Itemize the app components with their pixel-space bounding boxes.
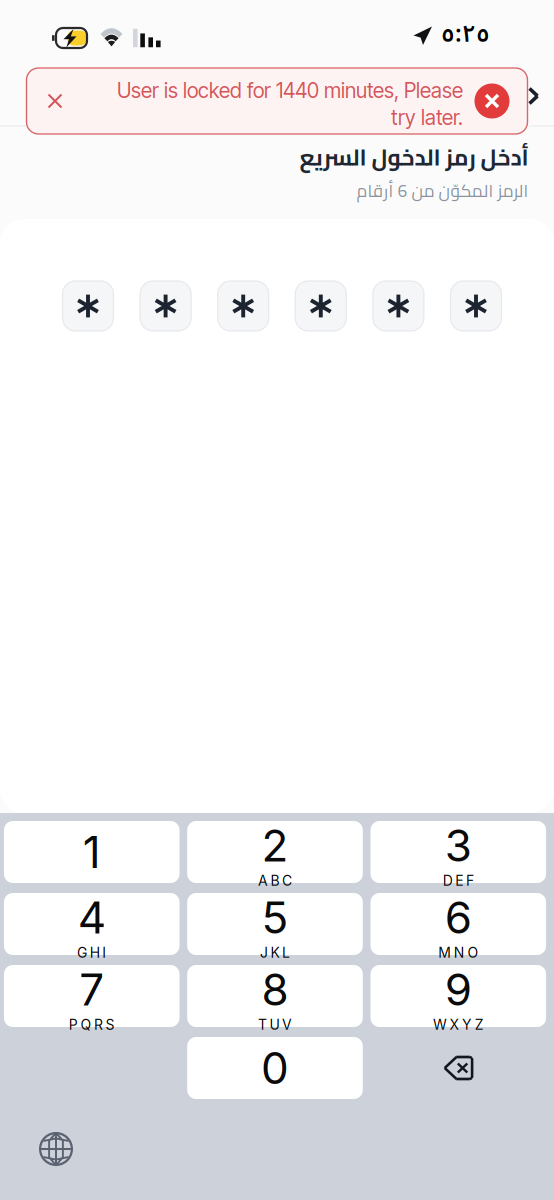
staticText: 4 [78,891,106,944]
staticText: 7 [79,963,104,1016]
button[interactable]: 2 [187,821,363,883]
staticText: P [69,1016,78,1033]
staticText: T [258,1016,267,1033]
staticText: R [94,1016,103,1033]
staticText: F [466,872,474,889]
staticText: أدخل رمز الدخول السريع [299,136,528,178]
staticText: M [438,944,451,961]
button[interactable]: Change keyboard [33,1126,79,1172]
button[interactable]: 1 [4,821,179,883]
button[interactable]: 5 [187,893,363,955]
staticText: J [260,944,268,961]
staticText: W [433,1016,447,1033]
staticText: try later. [391,105,463,130]
button[interactable]: 0 [187,1037,363,1099]
staticText: N [454,944,465,961]
staticText: 6 [445,891,472,944]
staticText: I [102,944,106,961]
staticText: D [443,872,453,889]
staticText: 9 [445,963,472,1016]
staticText: U [269,1016,279,1033]
button[interactable]: 7 [4,965,179,1027]
button[interactable]: Delete [428,1042,488,1094]
button[interactable]: 6 [370,893,546,955]
staticText: 1 [83,825,101,879]
staticText: 3 [445,819,472,872]
staticText: A [258,872,268,889]
staticText: X [449,1016,459,1033]
staticText: 8 [261,963,288,1016]
staticText: 5 [261,891,288,944]
staticText: Q [80,1016,91,1033]
staticText: 2 [261,819,288,872]
staticText: V [282,1016,292,1033]
staticText: Y [462,1016,472,1033]
button[interactable]: User is locked for 1440 minutes, Please [26,68,527,134]
button[interactable]: 8 [187,965,363,1027]
button[interactable]: 4 [4,893,179,955]
staticText: L [282,944,290,961]
staticText: G [77,944,87,961]
staticText: K [270,944,279,961]
staticText: E [455,872,463,889]
staticText: الرمز المكوّن من 6 أرقام [356,174,528,207]
staticText: 0 [261,1041,289,1095]
staticText: O [467,944,478,961]
button[interactable]: 3 [370,821,546,883]
button[interactable]: 9 [370,965,546,1027]
staticText: User is locked for 1440 minutes, Please [117,78,463,103]
staticText: H [90,944,100,961]
staticText: S [106,1016,115,1033]
staticText: B [270,872,279,889]
staticText: Z [475,1016,484,1033]
staticText: ٥:٢٥ [441,9,490,59]
staticText: C [282,872,292,889]
